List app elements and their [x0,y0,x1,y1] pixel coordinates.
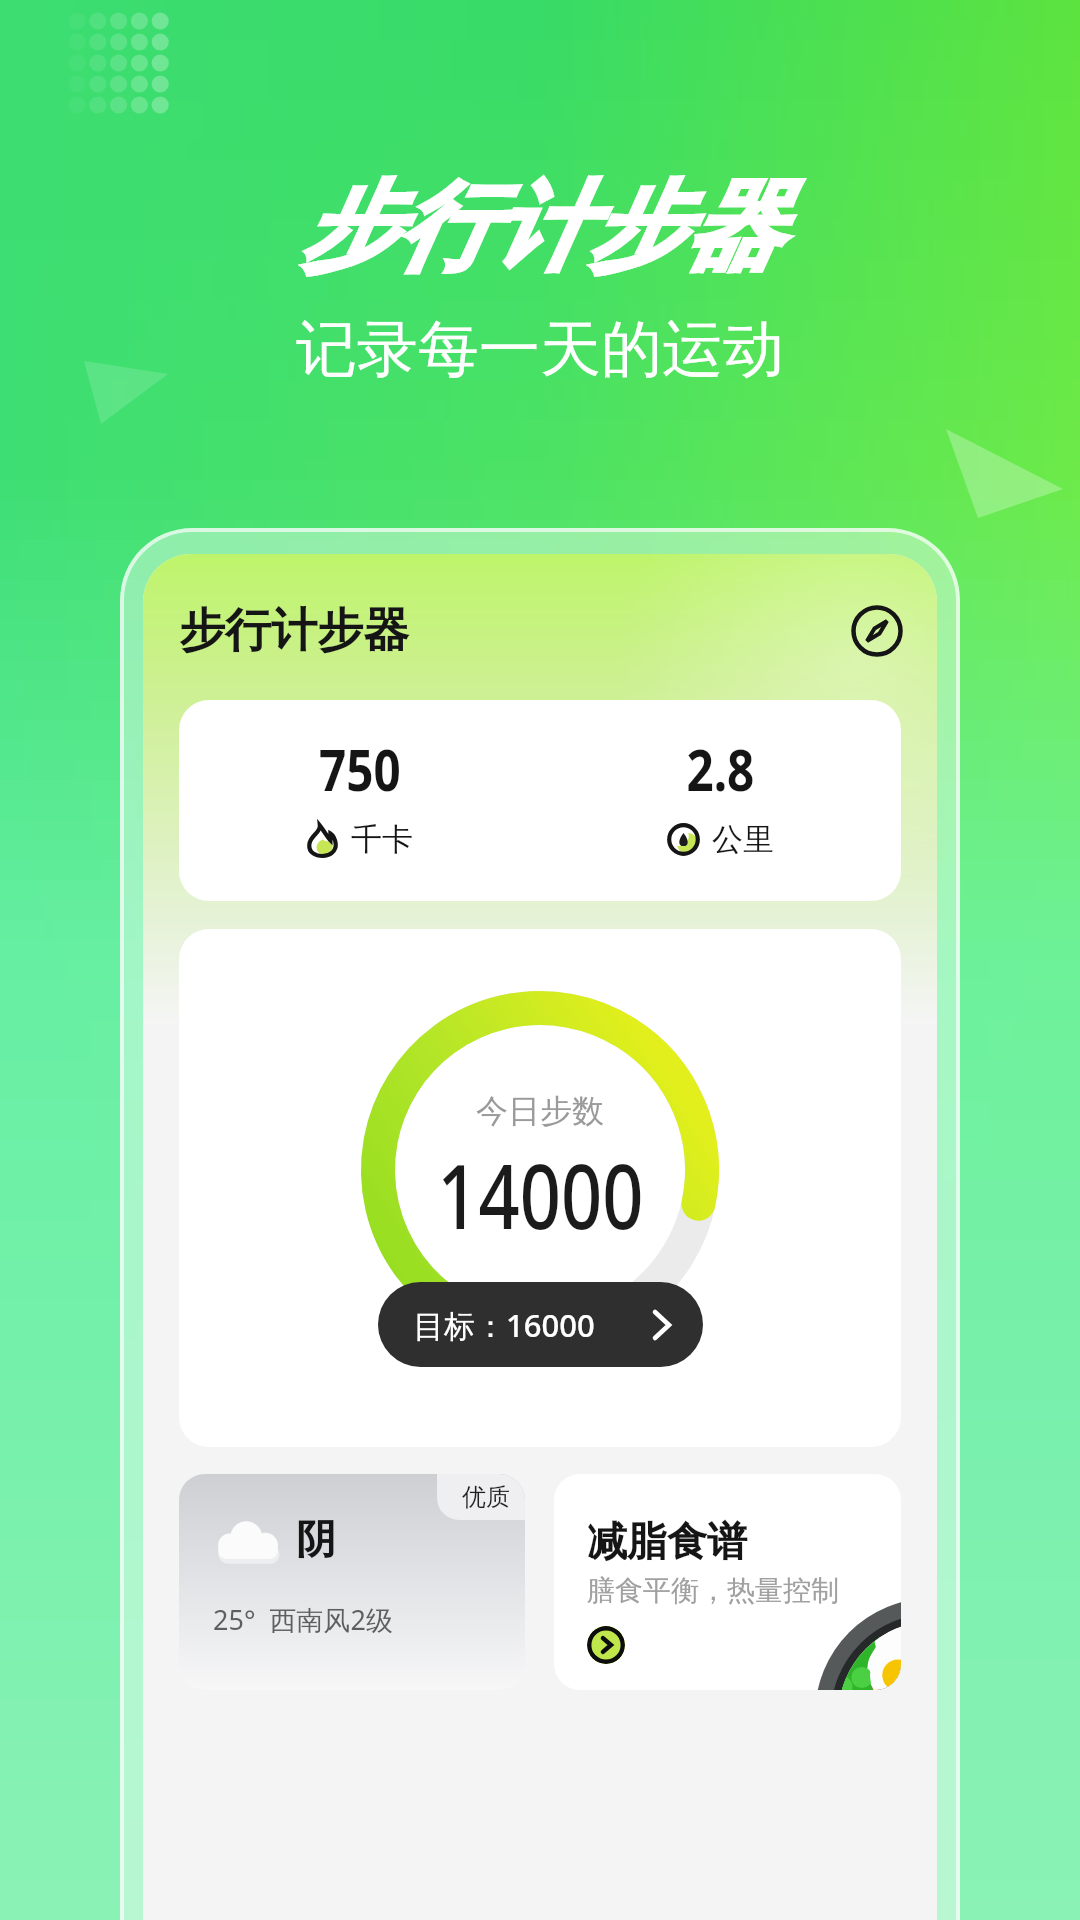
staticText: 千卡 [351,820,413,859]
button[interactable]: Open recipes [587,1626,625,1664]
staticText: 膳食平衡，热量控制 [587,1573,839,1608]
staticText: 750 [319,729,401,808]
staticText: 步行计步器 [179,602,409,660]
staticText: 今日步数 [476,1091,604,1131]
button[interactable]: Compass [851,605,903,657]
staticText: 公里 [712,820,774,859]
staticText: 减脂食谱 [587,1516,747,1566]
staticText: 步行计步器 [300,168,780,289]
staticText: 优质 [462,1482,510,1512]
button[interactable]: 优质 [179,1474,525,1690]
staticText: 阴 [296,1514,336,1564]
staticText: 14000 [437,1134,644,1255]
button[interactable]: 目标：16000 [378,1282,703,1367]
staticText: 2.8 [686,729,755,808]
button[interactable]: 750 [179,700,901,901]
staticText: 记录每一天的运动 [296,311,784,388]
button[interactable]: 减脂食谱 [554,1474,901,1690]
staticText: 25° 西南风2级 [213,1601,393,1638]
staticText: 目标：16000 [413,1304,595,1346]
